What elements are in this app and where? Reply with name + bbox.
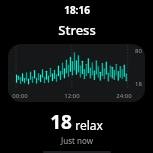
staticText: 24:00: [116, 92, 132, 100]
staticText: relax: [75, 117, 103, 133]
button[interactable]: 80: [8, 44, 145, 102]
staticText: 80: [135, 47, 142, 55]
staticText: 18:16: [64, 3, 90, 17]
staticText: 00:00: [12, 92, 28, 100]
staticText: 12:00: [64, 92, 80, 100]
staticText: 18: [135, 80, 142, 88]
staticText: Stress: [58, 21, 96, 39]
staticText: Just now: [61, 135, 93, 146]
staticText: 18: [50, 109, 72, 135]
